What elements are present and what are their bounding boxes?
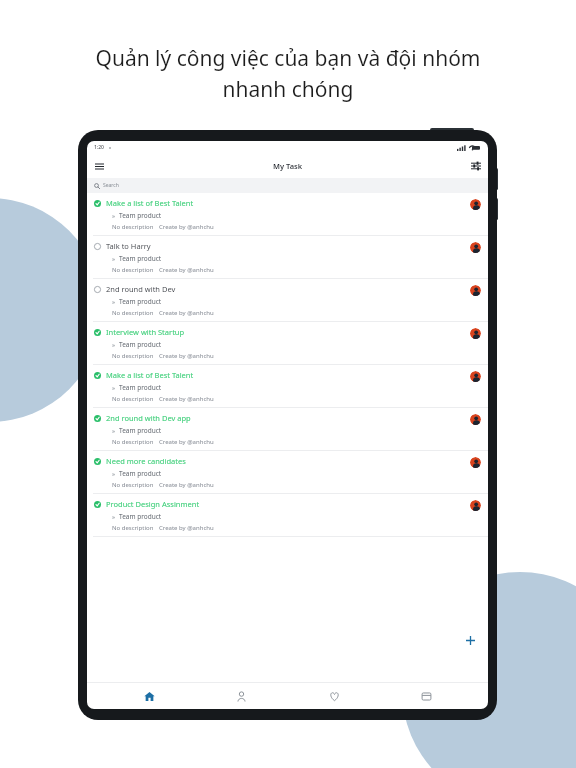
staticText: Search <box>103 182 119 189</box>
staticText: 2nd round with Dev app <box>106 413 191 423</box>
staticText: No description <box>112 524 154 532</box>
staticText: Team product <box>119 383 162 392</box>
staticText: Product Design Assinment <box>106 499 200 509</box>
staticText: My Task <box>273 161 303 171</box>
staticText: Team product <box>119 426 162 435</box>
button[interactable]: Talk to Harry <box>87 236 488 279</box>
staticText: Quản lý công việc của bạn và đội nhóm nh… <box>40 44 536 103</box>
button[interactable]: Search <box>87 178 488 193</box>
button[interactable]: Product Design Assinment <box>87 494 488 537</box>
button[interactable]: Assignee avatar <box>470 242 481 253</box>
staticText: Team product <box>119 254 162 263</box>
staticText: Team product <box>119 297 162 306</box>
button[interactable]: 2nd round with Dev <box>87 279 488 322</box>
button[interactable]: Filter <box>468 158 484 174</box>
staticText: » <box>112 470 116 478</box>
button[interactable]: Assignee avatar <box>470 199 481 210</box>
staticText: Make a list of Best Talent <box>106 370 194 380</box>
staticText: Create by @anhchu <box>159 438 214 446</box>
button[interactable]: Boards <box>396 683 456 709</box>
button[interactable]: Assignee avatar <box>470 285 481 296</box>
button[interactable]: Menu <box>91 158 107 174</box>
button[interactable]: Assignee avatar <box>470 457 481 468</box>
button[interactable]: 2nd round with Dev app <box>87 408 488 451</box>
button[interactable]: Make a list of Best Talent <box>87 365 488 408</box>
staticText: Interview with Startup <box>106 327 185 337</box>
staticText: » <box>112 513 116 521</box>
button[interactable]: Assignee avatar <box>470 500 481 511</box>
button[interactable]: Make a list of Best Talent <box>87 193 488 236</box>
staticText: » <box>112 427 116 435</box>
staticText: No description <box>112 438 154 446</box>
button[interactable]: Profile <box>211 683 271 709</box>
button[interactable]: Home <box>119 683 179 709</box>
button[interactable]: Assignee avatar <box>470 371 481 382</box>
staticText: Team product <box>119 469 162 478</box>
staticText: » <box>112 212 116 220</box>
staticText: No description <box>112 266 154 274</box>
staticText: Create by @anhchu <box>159 266 214 274</box>
button[interactable]: Favorites <box>304 683 364 709</box>
staticText: Talk to Harry <box>106 241 151 251</box>
staticText: Need more candidates <box>106 456 186 466</box>
staticText: Create by @anhchu <box>159 395 214 403</box>
staticText: 1:20 <box>94 144 104 151</box>
staticText: Team product <box>119 211 162 220</box>
staticText: Team product <box>119 512 162 521</box>
staticText: No description <box>112 352 154 360</box>
button[interactable]: Assignee avatar <box>470 328 481 339</box>
staticText: Create by @anhchu <box>159 309 214 317</box>
staticText: Create by @anhchu <box>159 481 214 489</box>
staticText: No description <box>112 395 154 403</box>
button[interactable]: Need more candidates <box>87 451 488 494</box>
button[interactable]: Assignee avatar <box>470 414 481 425</box>
staticText: Create by @anhchu <box>159 524 214 532</box>
staticText: Create by @anhchu <box>159 223 214 231</box>
staticText: Create by @anhchu <box>159 352 214 360</box>
staticText: » <box>112 341 116 349</box>
staticText: Team product <box>119 340 162 349</box>
staticText: 2nd round with Dev <box>106 284 176 294</box>
staticText: No description <box>112 223 154 231</box>
staticText: » <box>112 298 116 306</box>
button[interactable]: Add task <box>460 630 480 650</box>
staticText: Make a list of Best Talent <box>106 198 194 208</box>
staticText: » <box>112 384 116 392</box>
staticText: » <box>112 255 116 263</box>
staticText: No description <box>112 481 154 489</box>
staticText: No description <box>112 309 154 317</box>
button[interactable]: Interview with Startup <box>87 322 488 365</box>
